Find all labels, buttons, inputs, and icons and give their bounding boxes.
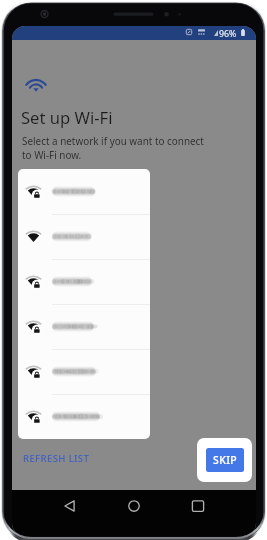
button[interactable] xyxy=(18,394,150,439)
button[interactable] xyxy=(18,349,150,394)
staticText: SKIP xyxy=(213,453,238,467)
staticText: 96% xyxy=(219,28,237,40)
button[interactable] xyxy=(18,214,150,259)
button[interactable]: Home xyxy=(122,494,146,518)
button[interactable]: REFRESH LIST xyxy=(20,449,93,468)
staticText: REFRESH LIST xyxy=(23,452,90,465)
staticText: Select a network if you want to connect … xyxy=(22,134,204,162)
staticText: Set up Wi-Fi xyxy=(21,106,113,129)
button[interactable] xyxy=(18,304,150,349)
button[interactable]: Recent apps xyxy=(186,494,210,518)
button[interactable]: Back xyxy=(57,494,81,518)
button[interactable] xyxy=(18,259,150,304)
button[interactable]: SKIP xyxy=(206,448,244,472)
button[interactable] xyxy=(18,169,150,214)
